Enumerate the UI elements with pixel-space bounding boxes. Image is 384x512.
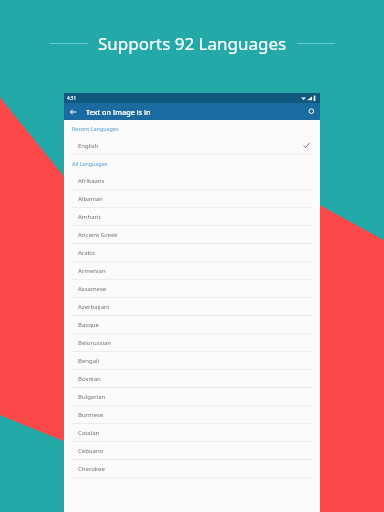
button[interactable]: Bengali — [64, 352, 320, 370]
staticText: Catalan — [78, 429, 100, 437]
staticText: Assamese — [78, 285, 107, 293]
staticText: Recent Languages — [72, 125, 119, 132]
button[interactable]: English — [64, 137, 320, 155]
button[interactable]: Search — [303, 103, 320, 120]
staticText: Bosnian — [78, 375, 101, 383]
button[interactable]: Arabic — [64, 244, 320, 262]
button[interactable]: Ancient Greek — [64, 226, 320, 244]
button[interactable]: Bosnian — [64, 370, 320, 388]
button[interactable]: Assamese — [64, 280, 320, 298]
staticText: English — [78, 142, 99, 150]
staticText: Text on Image is in — [86, 107, 151, 117]
staticText: Burmese — [78, 411, 104, 419]
staticText: Basque — [78, 321, 99, 329]
button[interactable]: Burmese — [64, 406, 320, 424]
staticText: All Languages — [72, 160, 108, 167]
button[interactable]: Basque — [64, 316, 320, 334]
button[interactable]: Belorussian — [64, 334, 320, 352]
button[interactable]: Cebuano — [64, 442, 320, 460]
button[interactable]: Azerbaijani — [64, 298, 320, 316]
staticText: Ancient Greek — [78, 231, 118, 239]
button[interactable]: Albanian — [64, 190, 320, 208]
staticText: Supports 92 Languages — [98, 32, 287, 55]
button[interactable]: Afrikaans — [64, 172, 320, 190]
staticText: Belorussian — [78, 339, 112, 347]
staticText: Cherokee — [78, 465, 105, 473]
button[interactable]: Armenian — [64, 262, 320, 280]
staticText: Amharic — [78, 213, 102, 221]
button[interactable]: Bulgarian — [64, 388, 320, 406]
staticText: Bengali — [78, 357, 100, 365]
button[interactable]: Back — [64, 103, 81, 120]
staticText: Albanian — [78, 195, 103, 203]
staticText: Armenian — [78, 267, 106, 275]
staticText: Bulgarian — [78, 393, 106, 401]
button[interactable]: Catalan — [64, 424, 320, 442]
staticText: Cebuano — [78, 447, 104, 455]
staticText: Arabic — [78, 249, 96, 257]
button[interactable]: Amharic — [64, 208, 320, 226]
staticText: 4:31 — [67, 95, 77, 101]
staticText: Azerbaijani — [78, 303, 110, 311]
staticText: Afrikaans — [78, 177, 105, 185]
button[interactable]: Cherokee — [64, 460, 320, 478]
